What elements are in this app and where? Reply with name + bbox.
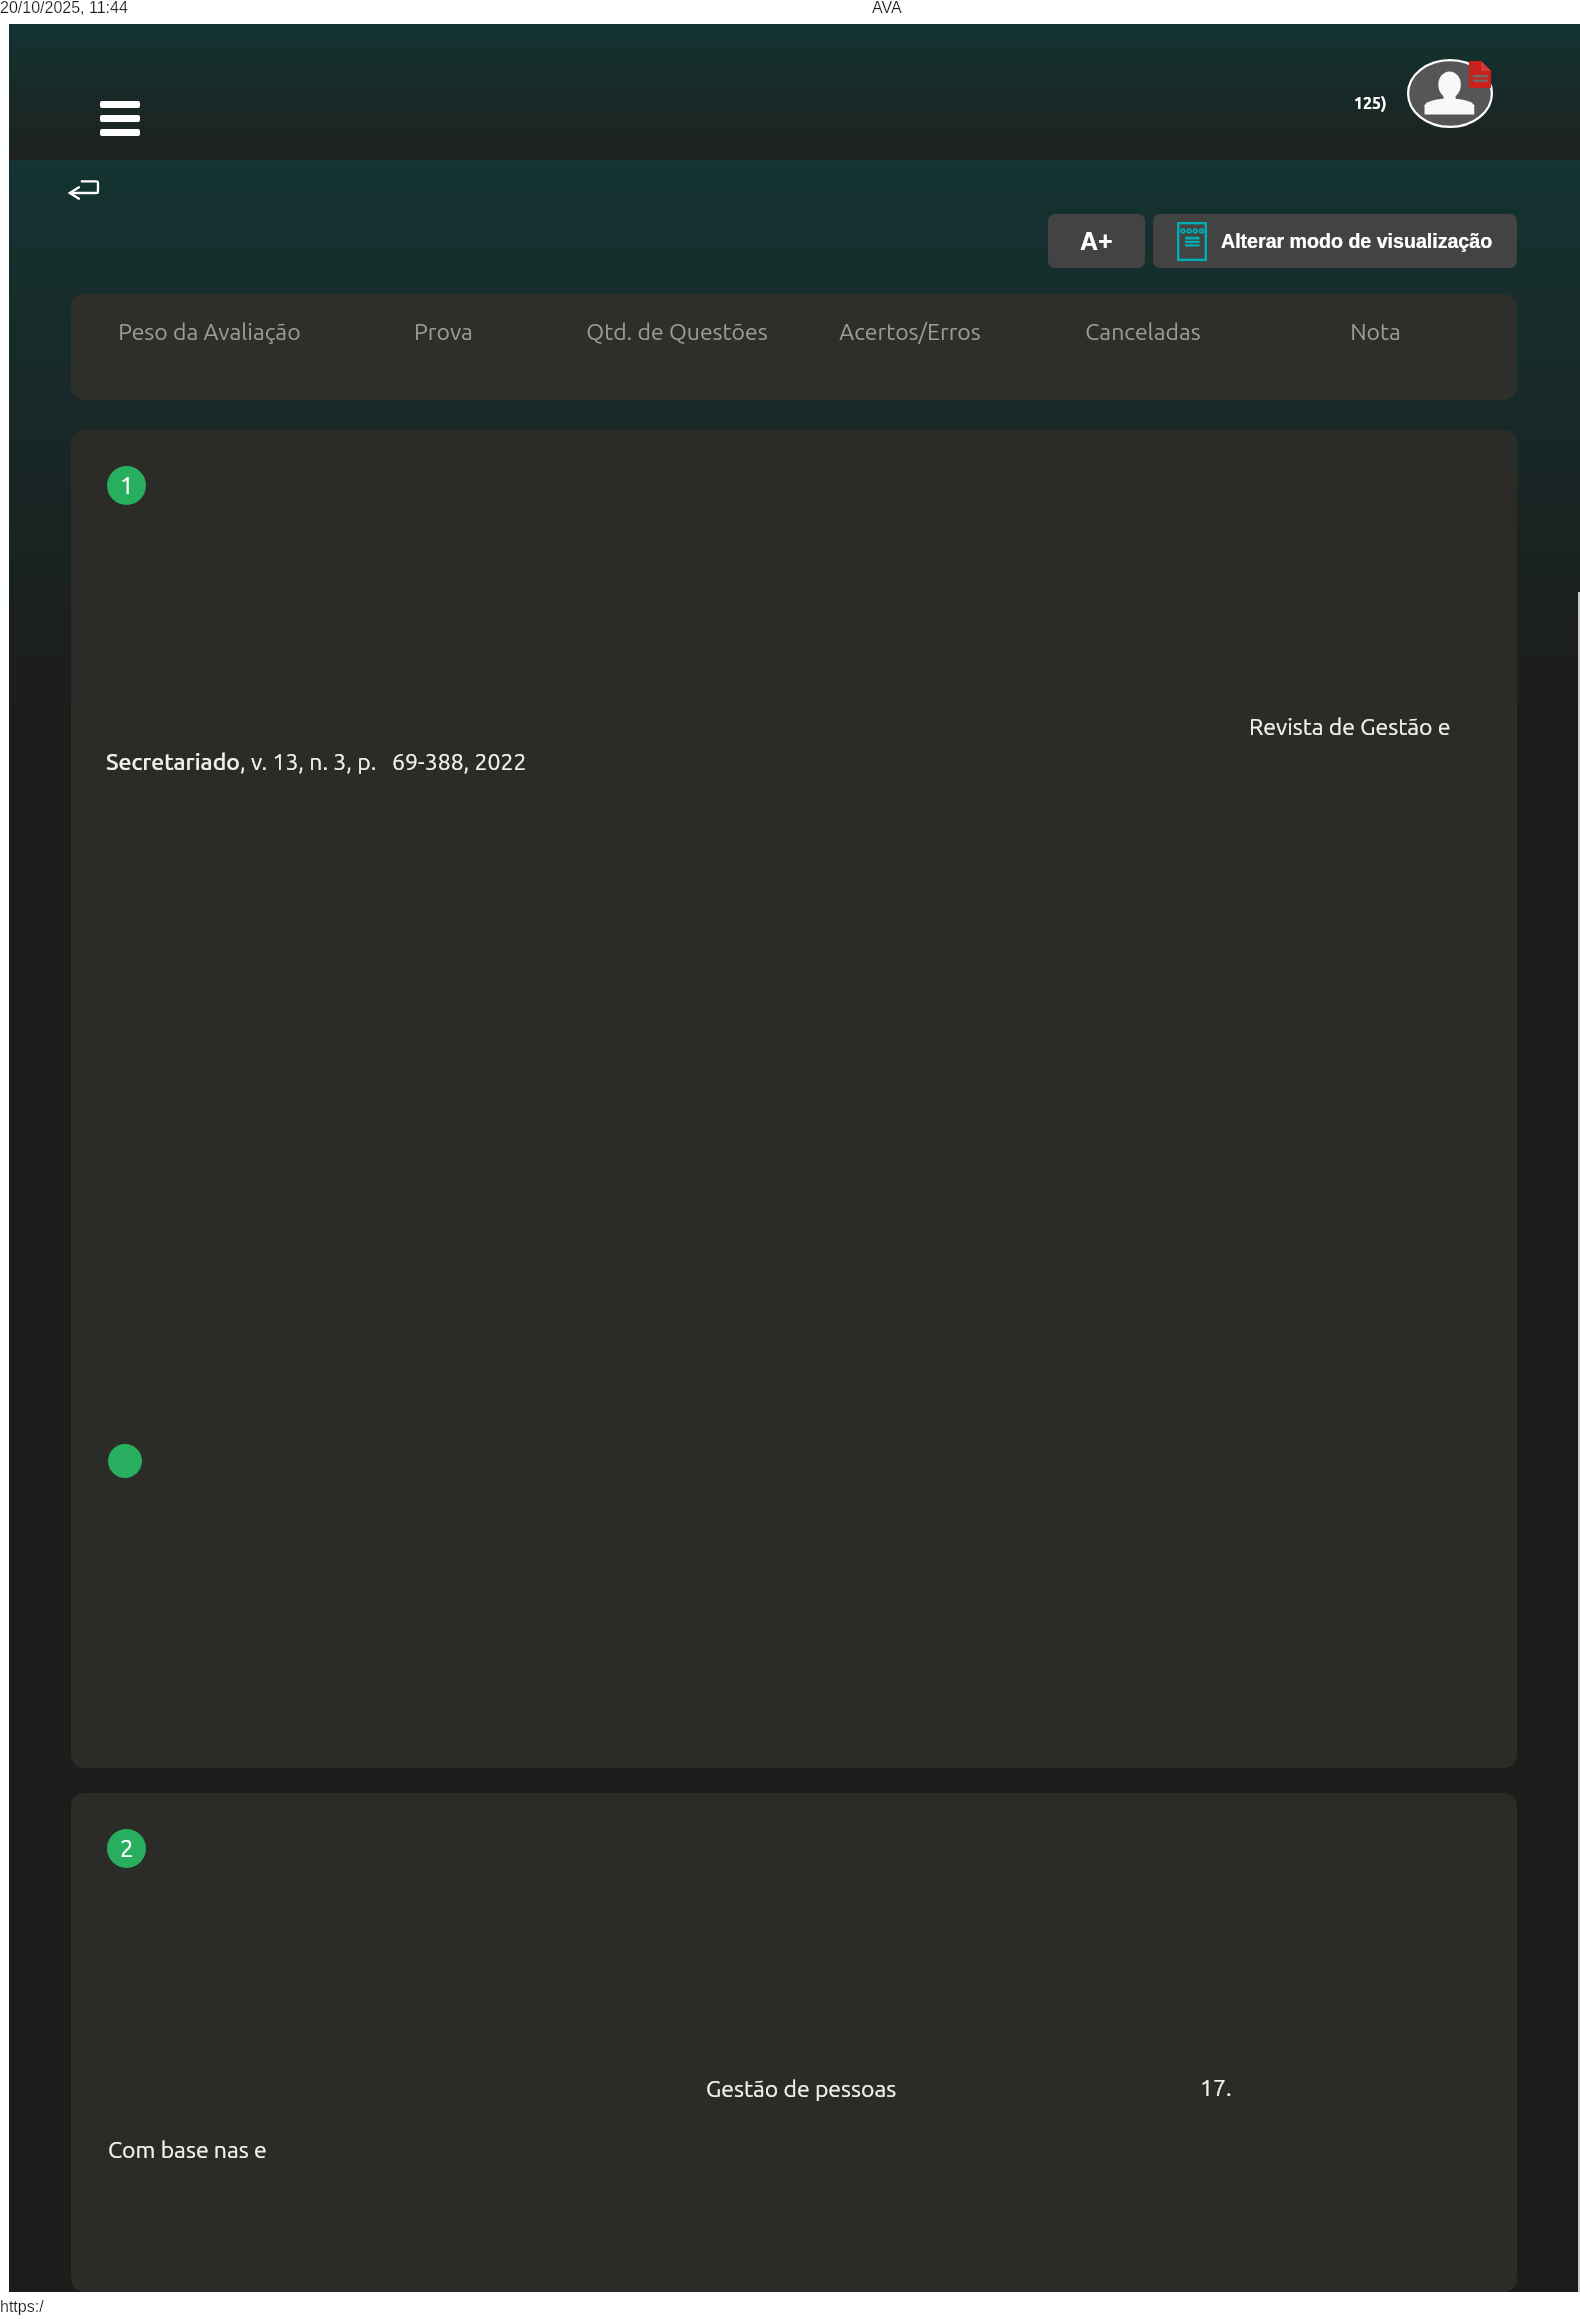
staticText: A+ bbox=[1080, 227, 1113, 255]
button[interactable]: Perfil do usuario bbox=[1407, 59, 1493, 128]
staticText: Com base nas e bbox=[108, 2137, 267, 2163]
staticText: Revista de Gestão e bbox=[1249, 714, 1451, 740]
staticText: Prova bbox=[414, 319, 473, 345]
button[interactable]: Alterar modo de visualização bbox=[1153, 214, 1517, 268]
button[interactable]: A+ bbox=[1048, 214, 1145, 268]
staticText: Canceladas bbox=[1085, 319, 1201, 345]
staticText: Acertos/Erros bbox=[839, 319, 981, 345]
staticText: Nota bbox=[1350, 319, 1401, 345]
staticText: https:/ bbox=[0, 2298, 44, 2316]
button[interactable]: Voltar bbox=[63, 170, 107, 210]
staticText: 17. bbox=[1200, 2075, 1232, 2101]
staticText: Peso da Avaliação bbox=[118, 319, 301, 345]
staticText: 125) bbox=[1354, 94, 1387, 112]
staticText: Alterar modo de visualização bbox=[1221, 230, 1493, 252]
staticText: Gestão de pessoas bbox=[706, 2076, 897, 2102]
staticText: 1 bbox=[120, 472, 134, 499]
staticText: 20/10/2025, 11:44 bbox=[0, 0, 128, 17]
staticText: AVA bbox=[872, 0, 902, 17]
staticText: Secretariado bbox=[106, 749, 240, 775]
staticText: , v. 13, n. 3, p. 69-388, 2022 bbox=[240, 749, 527, 775]
staticText: Qtd. de Questões bbox=[586, 319, 768, 345]
staticText: 2 bbox=[120, 1835, 134, 1862]
button[interactable]: Menu bbox=[94, 94, 146, 142]
